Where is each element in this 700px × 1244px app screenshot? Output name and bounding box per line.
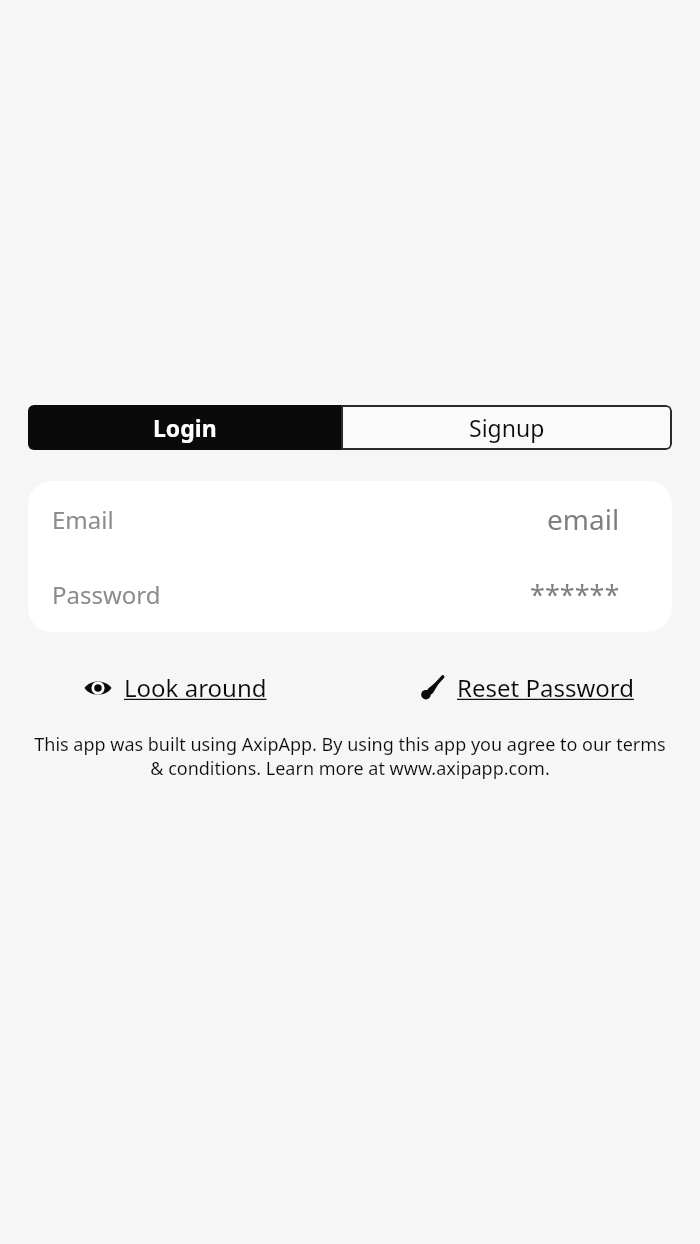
other: Reset Password	[417, 674, 445, 702]
button[interactable]: Signup	[341, 405, 672, 450]
staticText: email	[547, 500, 620, 538]
button[interactable]: Email	[28, 481, 672, 557]
staticText: ******	[530, 576, 620, 613]
button[interactable]: Login	[28, 405, 341, 450]
staticText: Login	[153, 412, 217, 443]
staticText: Reset Password	[457, 671, 634, 704]
staticText: This app was built using AxipApp. By usi…	[34, 732, 666, 780]
staticText: Signup	[469, 412, 545, 443]
other: Look around	[84, 677, 112, 699]
staticText: Look around	[124, 671, 267, 704]
button[interactable]: Reset Password	[413, 665, 638, 710]
staticText: Email	[52, 503, 114, 536]
button[interactable]: Password	[28, 557, 672, 632]
button[interactable]: Look around	[80, 665, 271, 710]
staticText: Password	[52, 578, 161, 611]
